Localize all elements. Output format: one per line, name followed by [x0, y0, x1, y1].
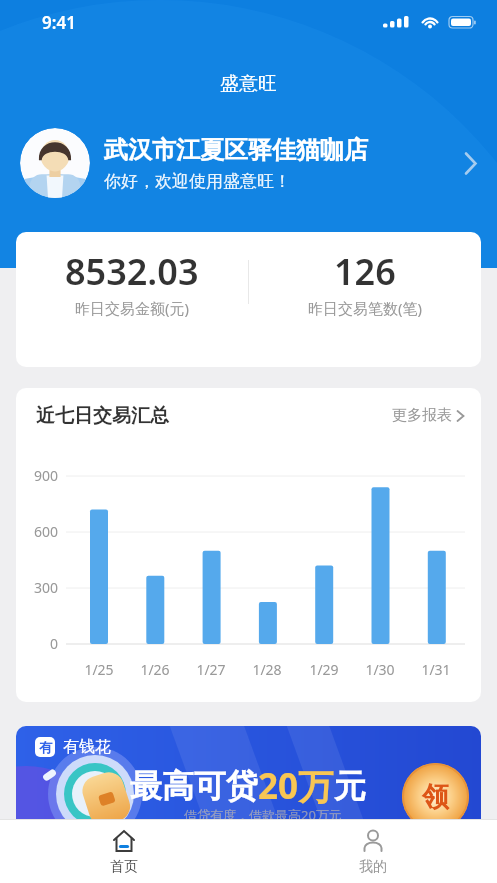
- button[interactable]: 首页: [0, 820, 248, 883]
- staticText: 你好，欢迎使用盛意旺！: [104, 171, 291, 192]
- staticText: 8532.03: [65, 247, 199, 296]
- staticText: 126: [334, 247, 396, 296]
- staticText: 0: [26, 634, 58, 653]
- staticText: 有钱花: [63, 737, 111, 757]
- button[interactable]: 更多报表: [392, 406, 465, 425]
- staticText: 1/26: [130, 660, 180, 679]
- staticText: 元: [334, 766, 366, 806]
- staticText: 9:41: [42, 11, 76, 34]
- staticText: 我的: [359, 858, 387, 876]
- staticText: 更多报表: [392, 406, 452, 425]
- button[interactable]: 126: [249, 232, 481, 367]
- button[interactable]: 有: [16, 726, 481, 838]
- button[interactable]: 8532.03: [16, 232, 248, 367]
- button[interactable]: 武汉市江夏区驿佳猫咖店: [20, 128, 497, 198]
- staticText: 1/30: [355, 660, 405, 679]
- staticText: 600: [26, 522, 58, 541]
- staticText: 1/31: [411, 660, 461, 679]
- staticText: 1/27: [186, 660, 236, 679]
- staticText: 近七日交易汇总: [36, 404, 169, 428]
- staticText: 昨日交易金额(元): [75, 298, 190, 318]
- staticText: 1/28: [242, 660, 292, 679]
- button[interactable]: 我的: [248, 820, 497, 883]
- staticText: 最高可贷: [130, 766, 258, 806]
- staticText: 1/25: [74, 660, 124, 679]
- staticText: 900: [26, 466, 58, 485]
- staticText: 首页: [110, 858, 138, 876]
- staticText: 有: [39, 739, 52, 755]
- staticText: 领: [422, 780, 449, 814]
- staticText: 昨日交易笔数(笔): [308, 298, 423, 318]
- staticText: 1/29: [299, 660, 349, 679]
- staticText: 借贷有度，借款最高20万元: [184, 806, 342, 824]
- staticText: 300: [26, 578, 58, 597]
- staticText: 武汉市江夏区驿佳猫咖店: [104, 135, 368, 165]
- staticText: 盛意旺: [220, 72, 277, 96]
- staticText: 20万: [258, 762, 334, 810]
